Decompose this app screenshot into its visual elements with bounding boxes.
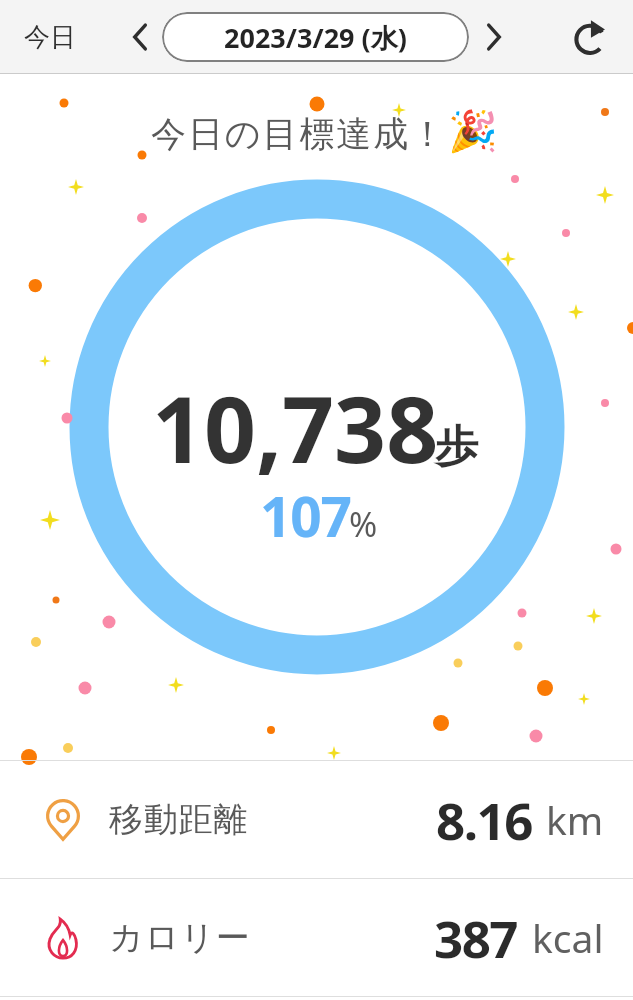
other: Distance xyxy=(46,799,80,841)
staticText: 移動距離 xyxy=(109,798,249,841)
staticText: 今日 xyxy=(24,21,76,54)
button[interactable]: Calories xyxy=(0,879,633,996)
staticText: 歩 xyxy=(435,420,478,474)
staticText: 107 xyxy=(260,478,351,553)
button[interactable]: 今日 xyxy=(10,0,90,74)
staticText: 387 xyxy=(434,903,518,972)
staticText: 2023/3/29 (水) xyxy=(224,19,407,56)
staticText: 8.16 xyxy=(436,785,532,854)
button[interactable]: Next day xyxy=(467,10,521,64)
staticText: kcal xyxy=(532,911,604,964)
staticText: 今日の目標達成！ xyxy=(151,112,448,156)
button[interactable]: 2023/3/29 (水) xyxy=(162,12,469,62)
staticText: 10,738 xyxy=(152,366,439,490)
button[interactable]: Distance xyxy=(0,761,633,878)
staticText: 🎉 xyxy=(448,108,498,155)
button[interactable]: Previous day xyxy=(113,10,167,64)
staticText: カロリー xyxy=(109,916,251,959)
other: Calories xyxy=(46,917,80,959)
staticText: km xyxy=(546,793,604,846)
staticText: % xyxy=(349,501,378,547)
button[interactable]: Refresh xyxy=(562,9,618,65)
